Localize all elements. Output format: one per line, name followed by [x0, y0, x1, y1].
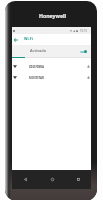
- button[interactable]: MOVISTAR: [12, 72, 91, 83]
- button[interactable]: Back: [12, 34, 20, 45]
- staticText: Wi-Fi: [24, 36, 33, 41]
- staticText: Activado: [30, 48, 47, 53]
- button[interactable]: DIGIFIBRA: [12, 61, 91, 72]
- staticText: DIGIFIBRA: [29, 65, 44, 69]
- staticText: 10:15: [80, 29, 88, 33]
- button[interactable]: Recent apps: [65, 170, 91, 189]
- button[interactable]: Home: [39, 170, 65, 189]
- staticText: MOVISTAR: [29, 76, 44, 80]
- button[interactable]: Back: [12, 170, 39, 189]
- button[interactable]: Activado: [12, 45, 91, 57]
- staticText: Honeywell: [39, 12, 67, 19]
